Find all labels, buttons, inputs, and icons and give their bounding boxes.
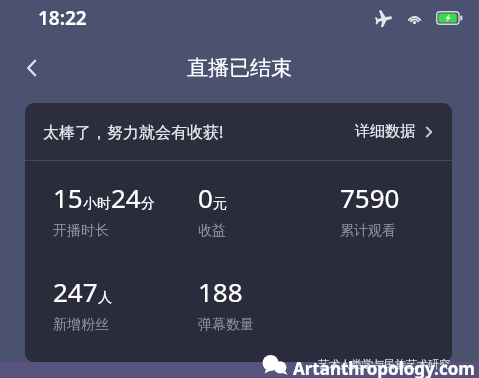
staticText: Artanthropology.com bbox=[293, 357, 475, 378]
staticText: 太棒了，努力就会有收获! bbox=[43, 121, 224, 143]
staticText: 收益 bbox=[198, 222, 226, 238]
staticText: 元 bbox=[213, 195, 227, 213]
other: Battery charging bbox=[436, 11, 463, 25]
other: Wi-Fi bbox=[406, 10, 423, 27]
staticText: 开播时长 bbox=[53, 222, 109, 238]
staticText: 新增粉丝 bbox=[53, 316, 109, 332]
staticText: 艺术人类学与民族艺术研究 bbox=[318, 357, 450, 371]
staticText: 188 bbox=[198, 274, 243, 309]
staticText: 小时 bbox=[83, 195, 111, 213]
staticText: 累计观看 bbox=[340, 222, 396, 238]
button[interactable]: Back bbox=[12, 48, 52, 88]
staticText: 详细数据 bbox=[355, 122, 415, 141]
staticText: 直播已结束 bbox=[187, 55, 292, 81]
staticText: 人 bbox=[98, 289, 112, 307]
staticText: 弹幕数量 bbox=[198, 316, 254, 332]
staticText: 24 bbox=[111, 180, 141, 215]
other: Airplane mode bbox=[375, 9, 393, 27]
staticText: 15 bbox=[53, 180, 83, 215]
staticText: 分 bbox=[141, 195, 155, 213]
staticText: 7590 bbox=[340, 180, 400, 215]
button[interactable]: 太棒了，努力就会有收获! bbox=[25, 103, 452, 160]
staticText: 247 bbox=[53, 274, 98, 309]
staticText: 18:22 bbox=[38, 5, 87, 31]
staticText: 0 bbox=[198, 180, 213, 215]
